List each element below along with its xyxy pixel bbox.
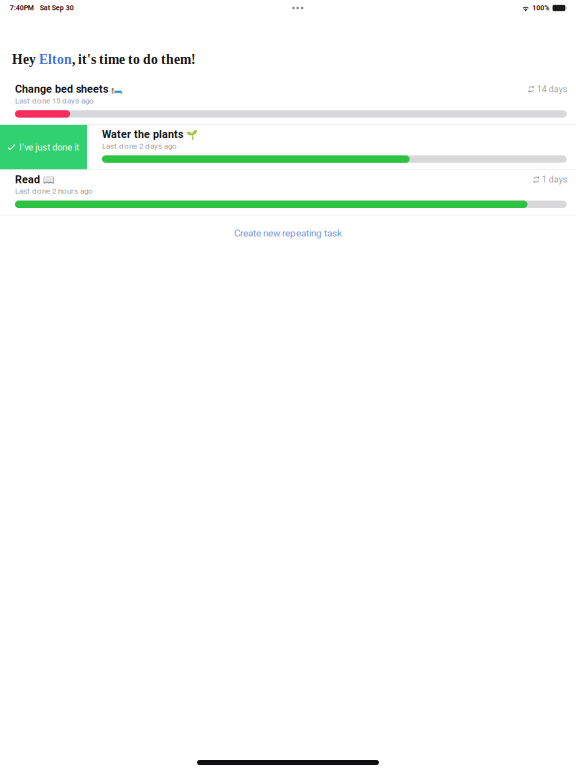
staticText: Create new repeating task: [234, 227, 342, 239]
staticText: 100%: [532, 4, 549, 12]
staticText: Sat Sep 30: [40, 4, 74, 12]
staticText: Last done 15 days ago: [15, 96, 94, 105]
staticText: Hey: [12, 52, 39, 67]
staticText: 1 days: [540, 174, 567, 185]
staticText: Read: [15, 173, 40, 186]
staticText: I've just done it: [19, 142, 79, 153]
staticText: [108, 83, 111, 95]
button[interactable]: Change bed sheets: [15, 80, 567, 124]
staticText: 🌱: [186, 129, 198, 140]
button[interactable]: Read: [15, 170, 567, 215]
staticText: 7:40PM: [10, 4, 34, 12]
staticText: Last done 2 hours ago: [15, 186, 93, 196]
button[interactable]: I've just done it: [0, 125, 87, 169]
staticText: Water the plants: [102, 128, 183, 141]
staticText: , it's time to do them!: [72, 52, 196, 67]
staticText: Elton: [39, 52, 72, 67]
staticText: Change bed sheets: [15, 83, 108, 95]
staticText: 🛏️: [111, 84, 123, 95]
staticText: [183, 128, 186, 141]
button[interactable]: Create new repeating task: [0, 215, 576, 248]
staticText: Last done 2 days ago: [102, 141, 177, 151]
staticText: 📖: [43, 174, 55, 185]
button[interactable]: Water the plants: [102, 125, 567, 169]
staticText: 14 days: [535, 84, 567, 94]
